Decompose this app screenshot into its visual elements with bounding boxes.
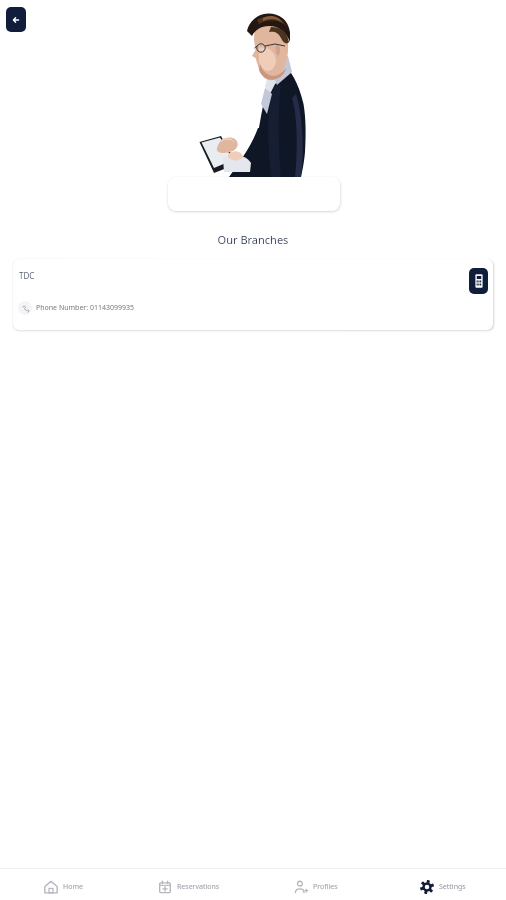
staticText: Home (63, 882, 83, 892)
staticText: Reservations (177, 882, 220, 892)
button[interactable]: TDC (13, 259, 493, 330)
button[interactable]: Profiles (252, 876, 379, 898)
button[interactable]: Home (0, 876, 126, 898)
button[interactable]: Settings (379, 876, 506, 898)
button[interactable]: Branch details (469, 268, 488, 294)
staticText: TDC (19, 270, 35, 281)
button[interactable]: Back (6, 7, 26, 32)
staticText: Profiles (313, 882, 338, 892)
staticText: Settings (439, 882, 466, 892)
staticText: Phone Number: 01143099935 (36, 303, 134, 313)
staticText: Our Branches (0, 232, 506, 247)
button[interactable]: Reservations (126, 876, 252, 898)
button[interactable]: Phone Number: 01143099935 (18, 301, 134, 315)
